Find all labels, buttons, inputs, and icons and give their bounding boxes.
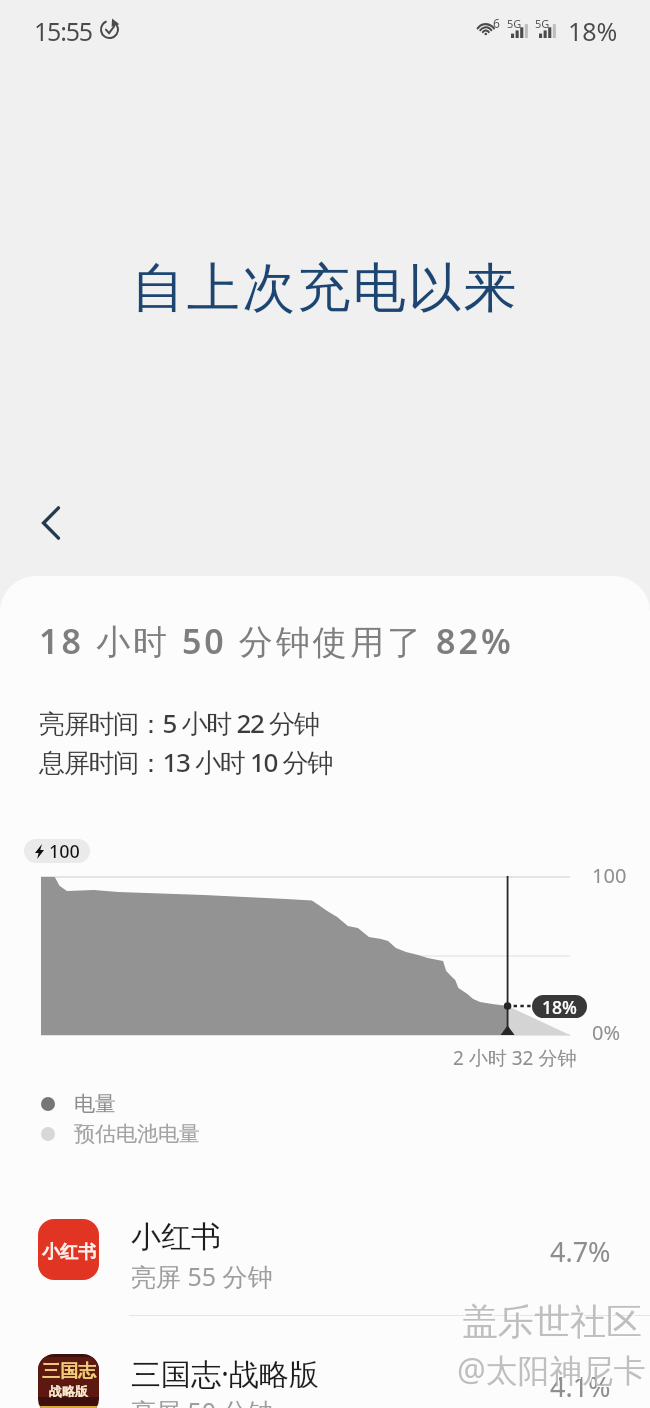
staticText: 18 小时 50 分钟使用了 82% xyxy=(39,618,514,664)
staticText: 预估电池电量 xyxy=(74,1121,200,1147)
staticText: 自上次充电以来 xyxy=(0,255,650,322)
staticText: 电量 xyxy=(74,1091,116,1117)
staticText: 5G xyxy=(507,16,522,31)
button[interactable]: 小红书 xyxy=(0,1214,650,1348)
button[interactable]: 三国志 xyxy=(0,1349,650,1408)
staticText: 5G xyxy=(535,16,550,31)
staticText: 盖乐世社区 xyxy=(463,1300,643,1345)
staticText: 息屏时间：13 小时 10 分钟 xyxy=(39,744,332,780)
staticText: 亮屏时间：5 小时 22 分钟 xyxy=(39,705,319,741)
staticText: 100 xyxy=(49,839,80,863)
staticText: 三国志·战略版 xyxy=(131,1353,320,1394)
staticText: 2 小时 32 分钟 xyxy=(453,1045,577,1071)
staticText: 4.7% xyxy=(550,1233,611,1270)
staticText: 15:55 xyxy=(34,14,92,48)
staticText: 亮屏 50 分钟 xyxy=(131,1394,273,1408)
button[interactable]: Back xyxy=(17,489,85,557)
staticText: @太阳神尼卡 xyxy=(457,1348,646,1392)
staticText: 盖乐世社区 xyxy=(462,1299,642,1344)
staticText: 100 xyxy=(592,862,627,889)
staticText: 4.1% xyxy=(550,1368,611,1405)
staticText: 18% xyxy=(568,14,618,48)
staticText: 0% xyxy=(592,1019,621,1046)
staticText: 小红书 xyxy=(131,1218,221,1256)
staticText: 三国志 xyxy=(42,1360,96,1383)
staticText: @太阳神尼卡 xyxy=(458,1349,647,1393)
staticText: 18% xyxy=(542,995,577,1018)
staticText: 6 xyxy=(493,15,500,31)
staticText: 战略版 xyxy=(49,1383,88,1399)
staticText: 小红书 xyxy=(42,1241,96,1264)
staticText: 亮屏 55 分钟 xyxy=(131,1259,273,1293)
